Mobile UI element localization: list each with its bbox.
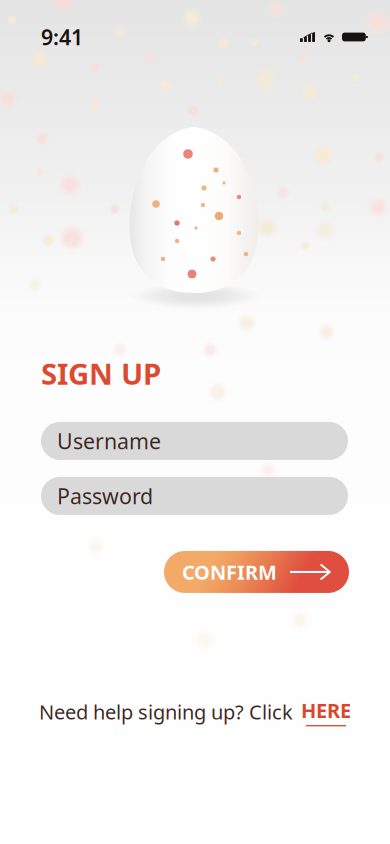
staticText: CONFIRM [182,559,277,585]
staticText: 9:41 [41,23,83,51]
staticText: SIGN UP [41,354,161,393]
button[interactable]: Password [41,477,348,515]
staticText: Password [57,482,153,510]
staticText: Need help signing up? Click [39,698,293,725]
button[interactable]: HERE [301,697,351,726]
button[interactable]: CONFIRM [164,551,349,593]
staticText: Username [57,427,161,455]
staticText: HERE [301,697,351,724]
button[interactable]: Username [41,422,348,460]
